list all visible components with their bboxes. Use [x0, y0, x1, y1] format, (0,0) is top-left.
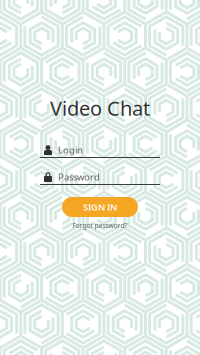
button[interactable]: SIGN IN — [62, 197, 138, 217]
button[interactable]: Login — [40, 143, 160, 158]
button[interactable]: Forgot password? — [72, 221, 127, 230]
button[interactable]: Password — [40, 170, 160, 185]
staticText: SIGN IN — [83, 201, 117, 213]
staticText: Forgot password? — [72, 221, 127, 230]
staticText: Password — [58, 171, 100, 183]
staticText: Video Chat — [50, 95, 150, 121]
staticText: Login — [58, 144, 83, 156]
